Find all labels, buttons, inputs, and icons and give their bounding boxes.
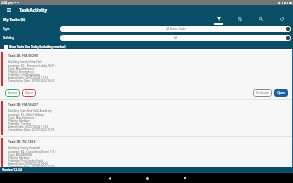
staticText: My Tasks (6): [3, 17, 26, 22]
button[interactable]: Task ID: FM-55290: [0, 51, 293, 100]
button[interactable]: All: [60, 35, 291, 41]
staticText: 2:44 pm: [1, 1, 14, 5]
button[interactable]: Back: [101, 173, 117, 183]
staticText: Task ID: FM-55290: [8, 53, 38, 58]
button[interactable]: Open: [274, 89, 288, 97]
staticText: Version 1.2.3.4: [2, 168, 22, 172]
staticText: Show Tasks Due Today (including overdue): [9, 45, 66, 49]
staticText: Type: [3, 27, 60, 31]
button[interactable]: Home: [139, 173, 155, 183]
staticText: Building: Sandy Vista Park Location: DC …: [8, 60, 55, 83]
staticText: Building: [3, 36, 60, 40]
staticText: Building: Sunshine Falls Academy Locatio…: [8, 109, 55, 132]
staticText: Re-Assign: [256, 91, 269, 95]
button[interactable]: Filter: [208, 15, 229, 26]
button[interactable]: Show Tasks Due Today (including overdue): [0, 44, 293, 49]
button[interactable]: Re-Assign: [253, 89, 272, 97]
staticText: Task ID: FM-55427: [8, 102, 38, 107]
staticText: Accept: [8, 91, 17, 95]
button[interactable]: Reject: [22, 89, 36, 97]
staticText: TaskActivity: [19, 7, 48, 13]
button[interactable]: Task ID: YG-1363: [0, 137, 293, 167]
staticText: Reject: [25, 91, 33, 95]
staticText: All: [174, 36, 178, 40]
button[interactable]: Search: [250, 15, 271, 26]
button[interactable]: Task ID: FM-55427: [0, 100, 293, 137]
button[interactable]: All Active Tasks: [60, 26, 291, 32]
staticText: Open: [277, 91, 285, 95]
button[interactable]: Menu: [0, 5, 17, 15]
button[interactable]: Refresh: [271, 15, 292, 26]
button[interactable]: Sort: [229, 15, 250, 26]
staticText: All Active Tasks: [166, 27, 186, 31]
button[interactable]: Recents: [177, 173, 193, 183]
staticText: Building: Sunny Hospital Location: B4 - …: [8, 146, 56, 167]
button[interactable]: Accept: [5, 89, 20, 97]
staticText: Task ID: YG-1363: [8, 139, 36, 144]
